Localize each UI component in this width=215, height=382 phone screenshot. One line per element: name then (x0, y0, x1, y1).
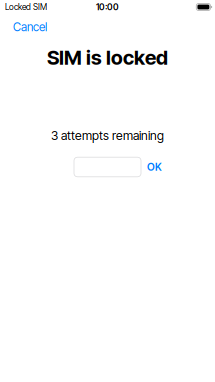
button[interactable]: SIM PIN (74, 157, 141, 177)
staticText: Cancel (13, 20, 47, 34)
staticText: Locked SIM (5, 2, 47, 12)
staticText: 3 attempts remaining (51, 128, 164, 143)
button[interactable]: Cancel (0, 15, 55, 39)
staticText: SIM is locked (47, 45, 168, 70)
staticText: OK (147, 161, 162, 173)
button[interactable]: OK (144, 157, 165, 177)
staticText: 10:00 (96, 2, 119, 12)
